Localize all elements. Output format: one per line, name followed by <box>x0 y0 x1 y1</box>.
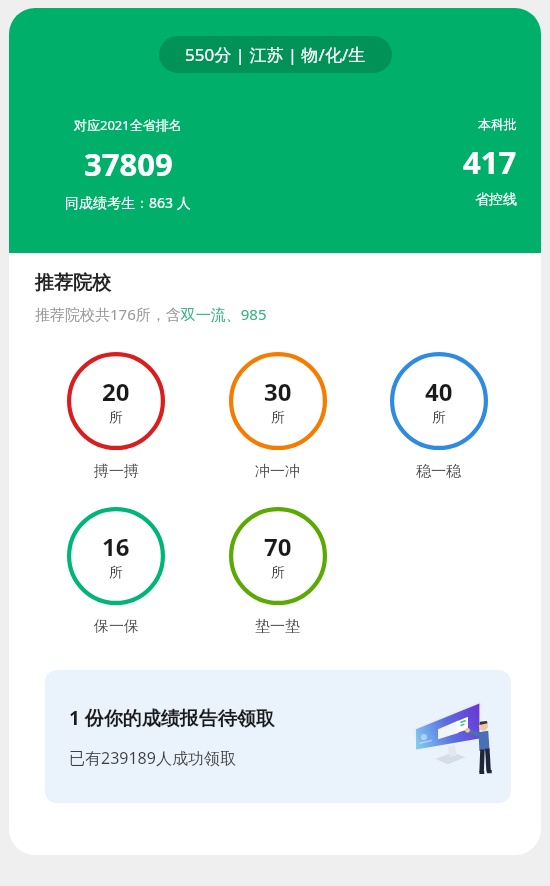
staticText: 所 <box>109 409 123 427</box>
staticText: 70 <box>264 530 292 563</box>
staticText: 推荐院校共176所，含双一流、985 <box>35 304 267 324</box>
staticText: 同成绩考生：863 人 <box>65 193 191 212</box>
staticText: 417 <box>463 141 517 183</box>
staticText: 所 <box>271 564 285 582</box>
staticText: 本科批 <box>478 116 517 132</box>
staticText: 稳一稳 <box>416 462 461 481</box>
staticText: 冲一冲 <box>255 462 300 481</box>
button[interactable]: 1 份你的成绩报告待领取 <box>45 670 511 803</box>
staticText: 搏一搏 <box>94 462 139 481</box>
button[interactable]: 550分 | 江苏 | 物/化/生 <box>159 36 392 73</box>
staticText: 所 <box>271 409 285 427</box>
button[interactable]: 16 <box>35 507 197 636</box>
staticText: 550分 | 江苏 | 物/化/生 <box>185 43 366 66</box>
staticText: 16 <box>102 530 130 563</box>
button[interactable]: 20 <box>35 352 197 481</box>
staticText: 垫一垫 <box>255 617 300 636</box>
staticText: 所 <box>109 564 123 582</box>
staticText: 所 <box>432 409 446 427</box>
staticText: 省控线 <box>475 191 517 209</box>
staticText: 1 份你的成绩报告待领取 <box>69 705 275 731</box>
staticText: 40 <box>425 375 453 408</box>
staticText: 37809 <box>84 143 173 185</box>
button[interactable]: 40 <box>358 352 519 481</box>
other: 成绩报告插图 <box>409 698 497 776</box>
staticText: 已有239189人成功领取 <box>69 747 236 769</box>
staticText: 30 <box>264 375 292 408</box>
staticText: 保一保 <box>94 617 139 636</box>
staticText: 20 <box>102 375 130 408</box>
staticText: 对应2021全省排名 <box>74 116 182 134</box>
button[interactable]: 70 <box>197 507 358 636</box>
button[interactable]: 30 <box>197 352 358 481</box>
staticText: 推荐院校 <box>35 271 111 295</box>
